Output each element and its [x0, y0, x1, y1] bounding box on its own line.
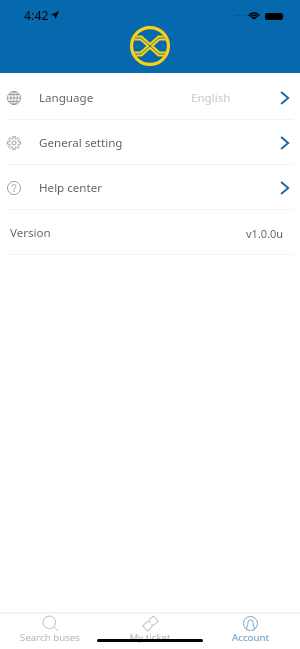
button[interactable]: Language	[0, 75, 300, 119]
staticText: v1.0.0u	[246, 226, 284, 241]
staticText: Language	[39, 90, 94, 106]
button[interactable]: My ticket	[100, 616, 200, 644]
button[interactable]: General setting	[0, 120, 300, 164]
staticText: Search buses	[20, 631, 80, 644]
button[interactable]: Help center	[0, 165, 300, 209]
button[interactable]: Account	[200, 616, 300, 644]
staticText: English	[191, 90, 231, 106]
staticText: General setting	[39, 135, 123, 151]
staticText: Help center	[39, 180, 103, 196]
staticText: My ticket	[129, 631, 171, 644]
button[interactable]: Search buses	[0, 616, 100, 644]
staticText: 4:42	[24, 7, 49, 24]
staticText: Account	[232, 631, 269, 644]
staticText: Version	[10, 225, 51, 241]
